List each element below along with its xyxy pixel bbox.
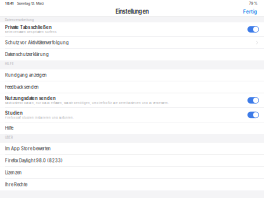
button[interactable]: Hilfe: [0, 122, 264, 134]
staticText: Sonntag 13. März: [14, 1, 44, 6]
staticText: Einstellungen: [115, 8, 148, 15]
button[interactable]: Rundgang anzeigen: [0, 69, 264, 81]
button[interactable]: Lizenzen: [0, 167, 264, 178]
staticText: 79 %: [247, 1, 258, 6]
staticText: Ihre Rechte: [5, 182, 27, 187]
staticText: Nutzungsdaten senden: [5, 96, 56, 101]
staticText: 18:41: [5, 1, 14, 6]
staticText: Feedback senden: [5, 84, 39, 90]
staticText: Lizenzen: [5, 170, 22, 175]
button[interactable]: Firefox Daylight 98.0 (8233): [0, 155, 264, 166]
button[interactable]: Fertig: [241, 8, 259, 15]
staticText: Rundgang anzeigen: [5, 73, 47, 78]
staticText: Mozilla strebt danach, nur das zu erfass…: [5, 101, 169, 105]
staticText: Hilfe: [5, 126, 13, 131]
button[interactable]: Private Tabs schließen: [0, 22, 264, 36]
staticText: HILFE: [5, 62, 14, 66]
button[interactable]: Schutz vor Aktivitätenverfolgung: [0, 37, 264, 48]
button[interactable]: Datenschutzerklärung: [0, 49, 264, 60]
staticText: Datenschutzerklärung: [5, 52, 49, 57]
button[interactable]: Nutzungsdaten senden: [0, 93, 264, 107]
staticText: Firefox darf Studien installieren und au…: [5, 116, 74, 119]
staticText: Fertig: [243, 9, 257, 14]
staticText: Im App Store bewerten: [5, 146, 51, 151]
button[interactable]: Ihre Rechte: [0, 179, 264, 190]
button[interactable]: Studien: [0, 108, 264, 122]
staticText: Schutz vor Aktivitätenverfolgung: [5, 40, 69, 45]
staticText: Beim Verlassen des privaten Surfens: [5, 30, 56, 34]
button[interactable]: Feedback senden: [0, 81, 264, 93]
button[interactable]: Im App Store bewerten: [0, 143, 264, 154]
staticText: ÜBER: [5, 136, 13, 139]
staticText: Private Tabs schließen: [5, 25, 52, 30]
staticText: Datenverarbeitung: [5, 18, 34, 22]
staticText: Studien: [5, 110, 23, 116]
staticText: Firefox Daylight 98.0 (8233): [5, 158, 63, 163]
